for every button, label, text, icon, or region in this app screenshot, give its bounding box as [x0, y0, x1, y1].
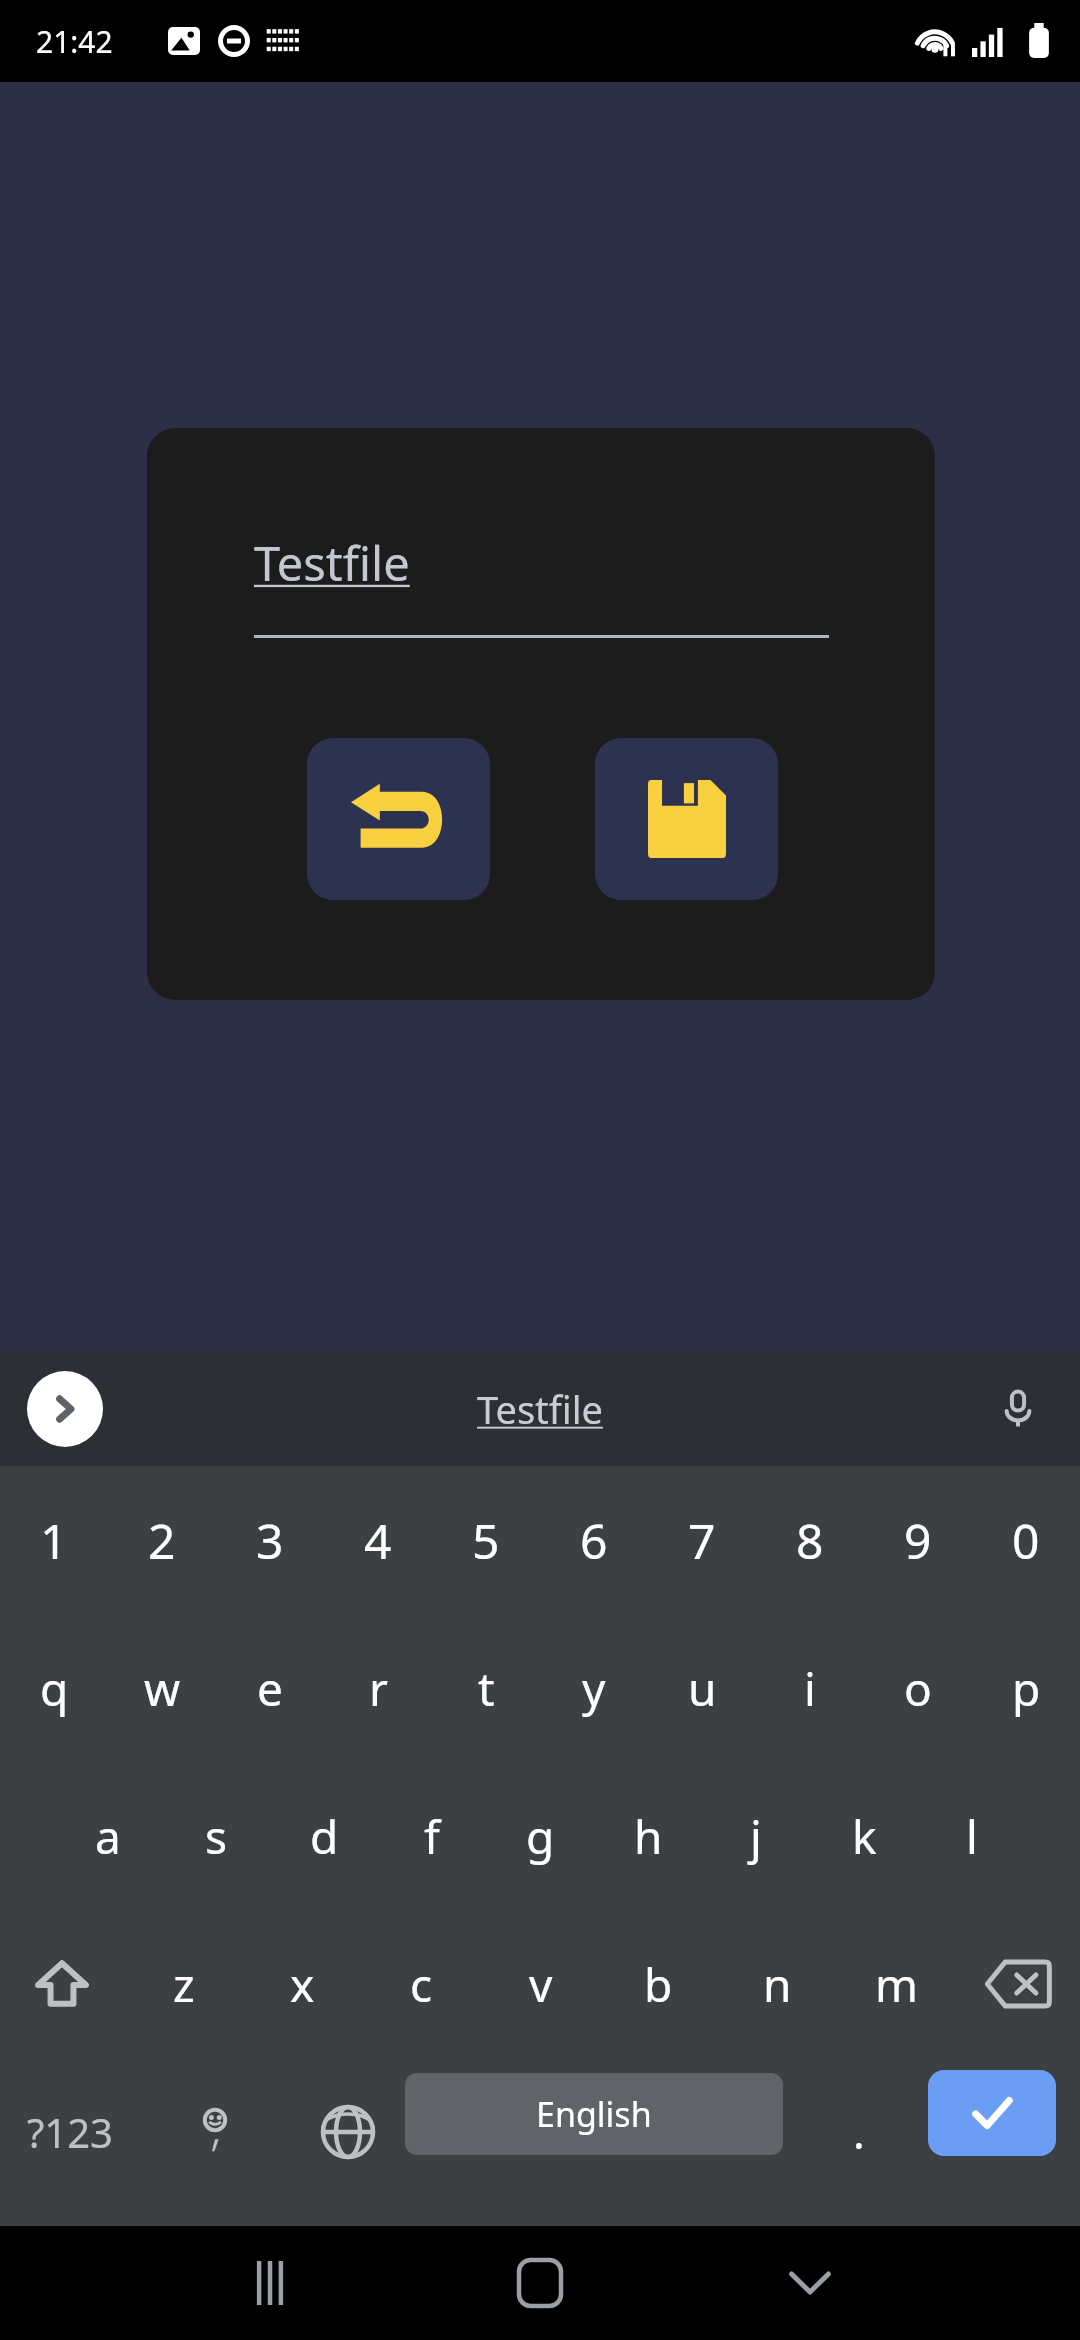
staticText: 8 [796, 1508, 824, 1573]
button[interactable]: n [718, 1910, 837, 2058]
button[interactable]: d [270, 1762, 378, 1910]
staticText: x [290, 1953, 315, 2016]
button[interactable]: Back [307, 738, 490, 900]
button[interactable]: Shift [0, 1910, 124, 2058]
button[interactable]: Recents [180, 2226, 360, 2340]
staticText: y [582, 1657, 606, 1720]
button[interactable]: 3 [216, 1466, 324, 1614]
button[interactable]: . [800, 2058, 918, 2206]
staticText: l [966, 1805, 978, 1868]
staticText: r [369, 1657, 388, 1720]
staticText: 21:42 [36, 21, 113, 62]
staticText: 0 [1012, 1508, 1040, 1573]
button[interactable]: Hide keyboard [720, 2226, 900, 2340]
staticText: i [804, 1657, 816, 1720]
staticText: s [205, 1805, 228, 1868]
staticText: 9 [904, 1508, 932, 1573]
button[interactable]: 4 [324, 1466, 432, 1614]
staticText: Testfile [254, 531, 410, 595]
staticText: 1 [40, 1508, 68, 1573]
staticText: u [688, 1657, 717, 1720]
button[interactable]: Testfile [477, 1383, 603, 1435]
button[interactable]: b [599, 1910, 718, 2058]
staticText: 6 [580, 1508, 608, 1573]
button[interactable]: o [864, 1614, 972, 1762]
button[interactable]: i [756, 1614, 864, 1762]
button[interactable]: e [216, 1614, 324, 1762]
button[interactable]: Backspace [956, 1910, 1080, 2058]
button[interactable]: x [243, 1910, 362, 2058]
button[interactable]: Home [450, 2226, 630, 2340]
button[interactable]: t [432, 1614, 540, 1762]
staticText: p [1012, 1657, 1041, 1720]
button[interactable]: j [702, 1762, 810, 1910]
button[interactable]: s [162, 1762, 270, 1910]
staticText: f [424, 1805, 440, 1868]
staticText: z [173, 1953, 195, 2016]
staticText: t [478, 1657, 495, 1720]
staticText: ?123 [27, 2105, 113, 2159]
button[interactable]: k [810, 1762, 918, 1910]
button[interactable]: 5 [432, 1466, 540, 1614]
button[interactable]: w [108, 1614, 216, 1762]
button[interactable]: 7 [648, 1466, 756, 1614]
staticText: 3 [256, 1508, 284, 1573]
button[interactable]: 2 [108, 1466, 216, 1614]
staticText: v [529, 1953, 553, 2016]
staticText: English [536, 2091, 652, 2137]
staticText: 4 [364, 1508, 392, 1573]
staticText: m [875, 1953, 919, 2016]
button[interactable]: y [540, 1614, 648, 1762]
button[interactable]: q [0, 1614, 108, 1762]
button[interactable]: h [594, 1762, 702, 1910]
button[interactable]: a [54, 1762, 162, 1910]
button[interactable]: Emoji and comma [150, 2058, 280, 2206]
button[interactable]: ?123 [0, 2058, 140, 2206]
button[interactable]: 6 [540, 1466, 648, 1614]
button[interactable]: l [918, 1762, 1026, 1910]
button[interactable]: Expand toolbar [27, 1371, 103, 1447]
staticText: 2 [148, 1508, 176, 1573]
staticText: e [257, 1657, 283, 1720]
button[interactable]: 1 [0, 1466, 108, 1614]
button[interactable]: c [362, 1910, 481, 2058]
button[interactable]: 0 [972, 1466, 1080, 1614]
staticText: q [40, 1657, 69, 1720]
staticText: d [310, 1805, 339, 1868]
button[interactable]: z [124, 1910, 243, 2058]
staticText: k [852, 1805, 877, 1868]
button[interactable]: p [972, 1614, 1080, 1762]
button[interactable]: v [481, 1910, 600, 2058]
button[interactable]: 9 [864, 1466, 972, 1614]
staticText: h [634, 1805, 663, 1868]
staticText: . [853, 2102, 865, 2162]
staticText: c [410, 1953, 433, 2016]
button[interactable]: r [324, 1614, 432, 1762]
button[interactable]: g [486, 1762, 594, 1910]
staticText: 5 [472, 1508, 500, 1573]
staticText: j [750, 1805, 762, 1868]
button[interactable]: f [378, 1762, 486, 1910]
staticText: n [763, 1953, 792, 2016]
staticText: Testfile [477, 1383, 603, 1435]
staticText: o [904, 1657, 932, 1720]
button[interactable]: Change language [288, 2058, 408, 2206]
staticText: g [526, 1805, 555, 1868]
button[interactable]: 8 [756, 1466, 864, 1614]
staticText: a [95, 1805, 121, 1868]
button[interactable]: English [405, 2073, 783, 2155]
staticText: w [144, 1657, 181, 1720]
staticText: b [644, 1953, 673, 2016]
button[interactable]: Save [595, 738, 778, 900]
button[interactable]: Enter [928, 2070, 1056, 2156]
staticText: 7 [688, 1508, 716, 1573]
button[interactable]: m [837, 1910, 956, 2058]
button[interactable]: u [648, 1614, 756, 1762]
button[interactable]: Voice input [978, 1369, 1058, 1449]
